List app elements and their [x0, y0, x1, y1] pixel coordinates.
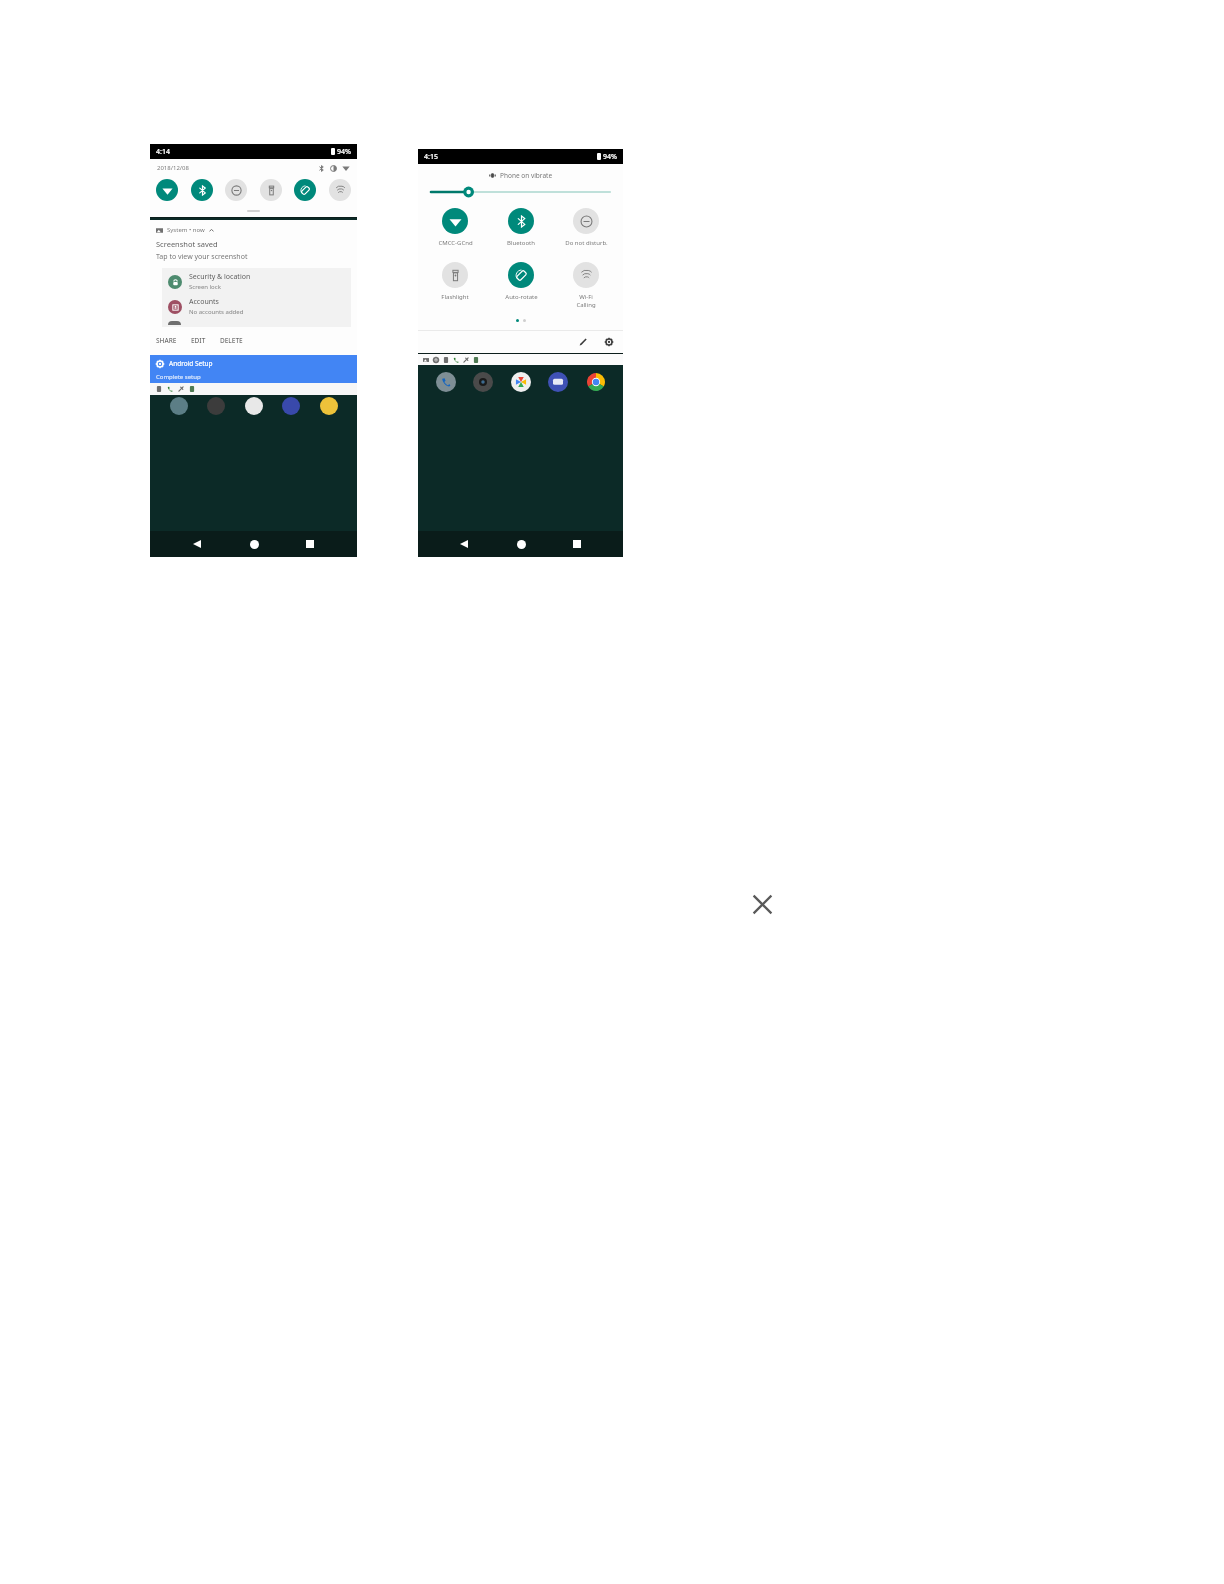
staticText: SHARE: [156, 336, 177, 345]
staticText: 94%: [337, 147, 351, 157]
staticText: No accounts added: [189, 308, 244, 316]
button[interactable]: EDIT: [191, 334, 206, 347]
staticText: Tap to view your screenshot: [156, 252, 248, 262]
button[interactable]: Bluetooth: [492, 208, 550, 247]
staticText: Do not disturb.: [565, 239, 608, 247]
button[interactable]: Android Setup: [156, 359, 351, 368]
staticText: Wi-Fi Calling: [576, 293, 596, 309]
staticText: Accounts: [189, 297, 219, 307]
button[interactable]: Auto-rotate: [294, 179, 316, 201]
staticText: System • now: [167, 226, 205, 234]
button[interactable]: App: [207, 397, 225, 415]
button[interactable]: App: [170, 397, 188, 415]
button[interactable]: Back: [187, 534, 207, 554]
staticText: Complete setup: [156, 373, 201, 381]
staticText: DELETE: [220, 336, 243, 345]
button[interactable]: Bluetooth: [191, 179, 213, 201]
button[interactable]: Phone: [436, 372, 456, 392]
button[interactable]: Brightness: [431, 186, 610, 198]
staticText: 2018/12/08: [157, 164, 189, 172]
staticText: 94%: [603, 152, 617, 162]
button[interactable]: Photos: [511, 372, 531, 392]
button[interactable]: CMCC-GCnd: [426, 208, 484, 247]
button[interactable]: App: [320, 397, 338, 415]
button[interactable]: App: [245, 397, 263, 415]
button[interactable]: Accounts: [168, 297, 351, 316]
staticText: Screenshot saved: [156, 239, 218, 249]
button[interactable]: Chrome: [586, 372, 606, 392]
staticText: Auto-rotate: [505, 293, 538, 301]
button[interactable]: Security & location: [168, 272, 351, 291]
button[interactable]: Settings: [602, 335, 616, 349]
staticText: Flashlight: [441, 293, 469, 301]
staticText: 4:14: [156, 147, 170, 157]
button[interactable]: DELETE: [220, 334, 243, 347]
button[interactable]: Back: [454, 534, 474, 554]
staticText: CMCC-GCnd: [438, 239, 473, 247]
button[interactable]: Messages: [548, 372, 568, 392]
staticText: EDIT: [191, 336, 206, 345]
staticText: 4:15: [424, 152, 438, 162]
button[interactable]: Home: [511, 534, 531, 554]
staticText: Bluetooth: [507, 239, 535, 247]
button[interactable]: Flashlight: [426, 262, 484, 301]
button[interactable]: Do not disturb.: [557, 208, 615, 247]
button[interactable]: SHARE: [156, 334, 177, 347]
button[interactable]: Recents: [300, 534, 320, 554]
staticText: Screen lock: [189, 283, 221, 291]
button[interactable]: Close: [748, 890, 777, 919]
button[interactable]: Wi-Fi: [156, 179, 178, 201]
button[interactable]: Do not disturb: [225, 179, 247, 201]
staticText: Android Setup: [169, 359, 213, 368]
button[interactable]: Wi-Fi Calling: [329, 179, 351, 201]
button[interactable]: Home: [244, 534, 264, 554]
button[interactable]: Edit: [576, 335, 590, 349]
button[interactable]: Flashlight: [260, 179, 282, 201]
staticText: Security & location: [189, 272, 251, 282]
staticText: Phone on vibrate: [500, 171, 553, 180]
button[interactable]: Auto-rotate: [492, 262, 550, 301]
button[interactable]: Camera: [473, 372, 493, 392]
button[interactable]: Recents: [567, 534, 587, 554]
button[interactable]: App: [282, 397, 300, 415]
button[interactable]: Wi-Fi Calling: [557, 262, 615, 309]
